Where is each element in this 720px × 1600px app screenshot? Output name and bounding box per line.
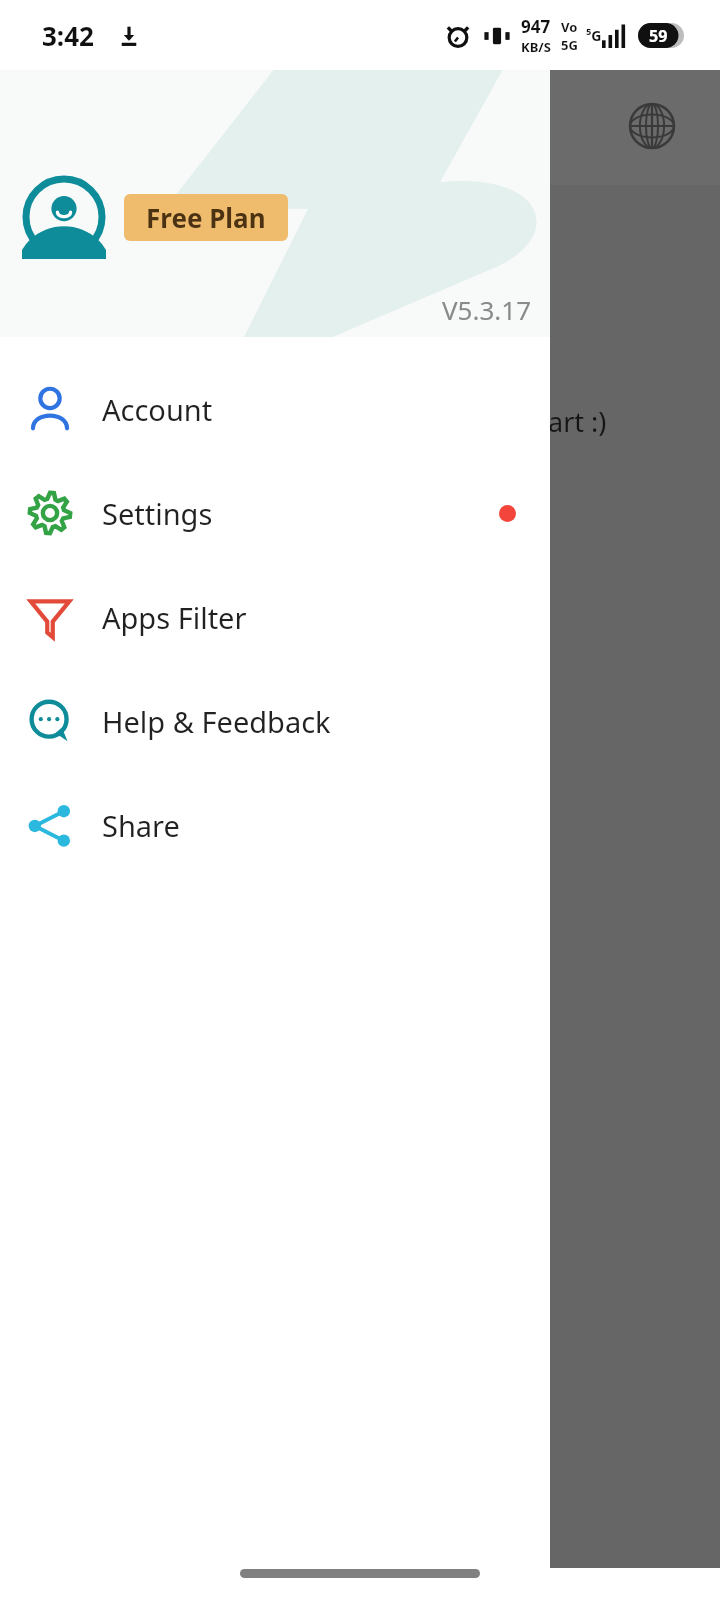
staticText: Vo — [561, 18, 578, 36]
staticText: 947 — [521, 15, 551, 38]
staticText: KB/S — [521, 38, 551, 56]
staticText: Apps Filter — [102, 598, 247, 637]
button[interactable]: Free Plan — [124, 194, 288, 241]
button[interactable]: Help & Feedback — [0, 669, 550, 773]
staticText: Help & Feedback — [102, 702, 331, 741]
staticText: Settings — [102, 494, 213, 533]
staticText: V5.3.17 — [442, 292, 532, 327]
staticText: Free Plan — [146, 200, 266, 235]
staticText: Account — [102, 390, 213, 429]
staticText: 59 — [649, 25, 668, 47]
staticText: 5G — [561, 36, 578, 54]
staticText: art :) — [548, 403, 607, 440]
button[interactable]: Share — [0, 773, 550, 877]
button[interactable]: Account — [0, 357, 550, 461]
staticText: Share — [102, 806, 180, 845]
button[interactable]: Apps Filter — [0, 565, 550, 669]
button[interactable]: Settings — [0, 461, 550, 565]
staticText: 3:42 — [42, 18, 94, 53]
staticText: ⁵G — [586, 26, 602, 45]
